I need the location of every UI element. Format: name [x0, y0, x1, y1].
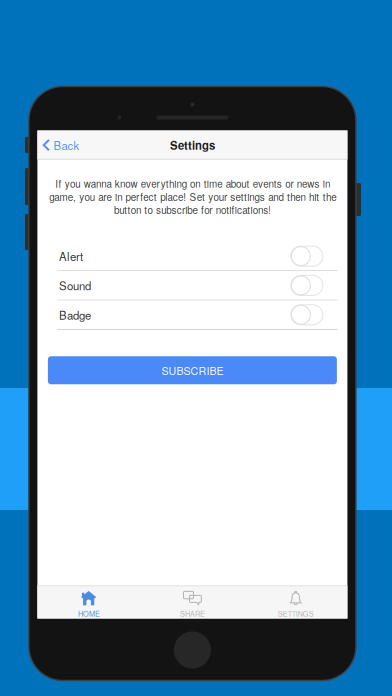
- button[interactable]: SETTINGS: [244, 585, 347, 618]
- button[interactable]: Sound: [47, 271, 337, 300]
- staticText: Badge: [59, 307, 91, 323]
- staticText: SUBSCRIBE: [161, 363, 223, 378]
- staticText: SETTINGS: [278, 608, 314, 619]
- button[interactable]: Alert: [47, 242, 337, 271]
- staticText: Back: [53, 137, 79, 153]
- staticText: HOME: [78, 608, 100, 619]
- button[interactable]: Back: [37, 130, 107, 159]
- button[interactable]: SUBSCRIBE: [48, 356, 337, 384]
- staticText: Sound: [59, 277, 91, 293]
- staticText: Settings: [170, 137, 215, 153]
- button[interactable]: HOME: [37, 585, 141, 618]
- staticText: Alert: [59, 248, 83, 264]
- staticText: SHARE: [180, 608, 205, 619]
- staticText: If you wanna know everything on time abo…: [49, 176, 336, 217]
- button[interactable]: Badge: [47, 300, 337, 330]
- button[interactable]: SHARE: [141, 585, 244, 618]
